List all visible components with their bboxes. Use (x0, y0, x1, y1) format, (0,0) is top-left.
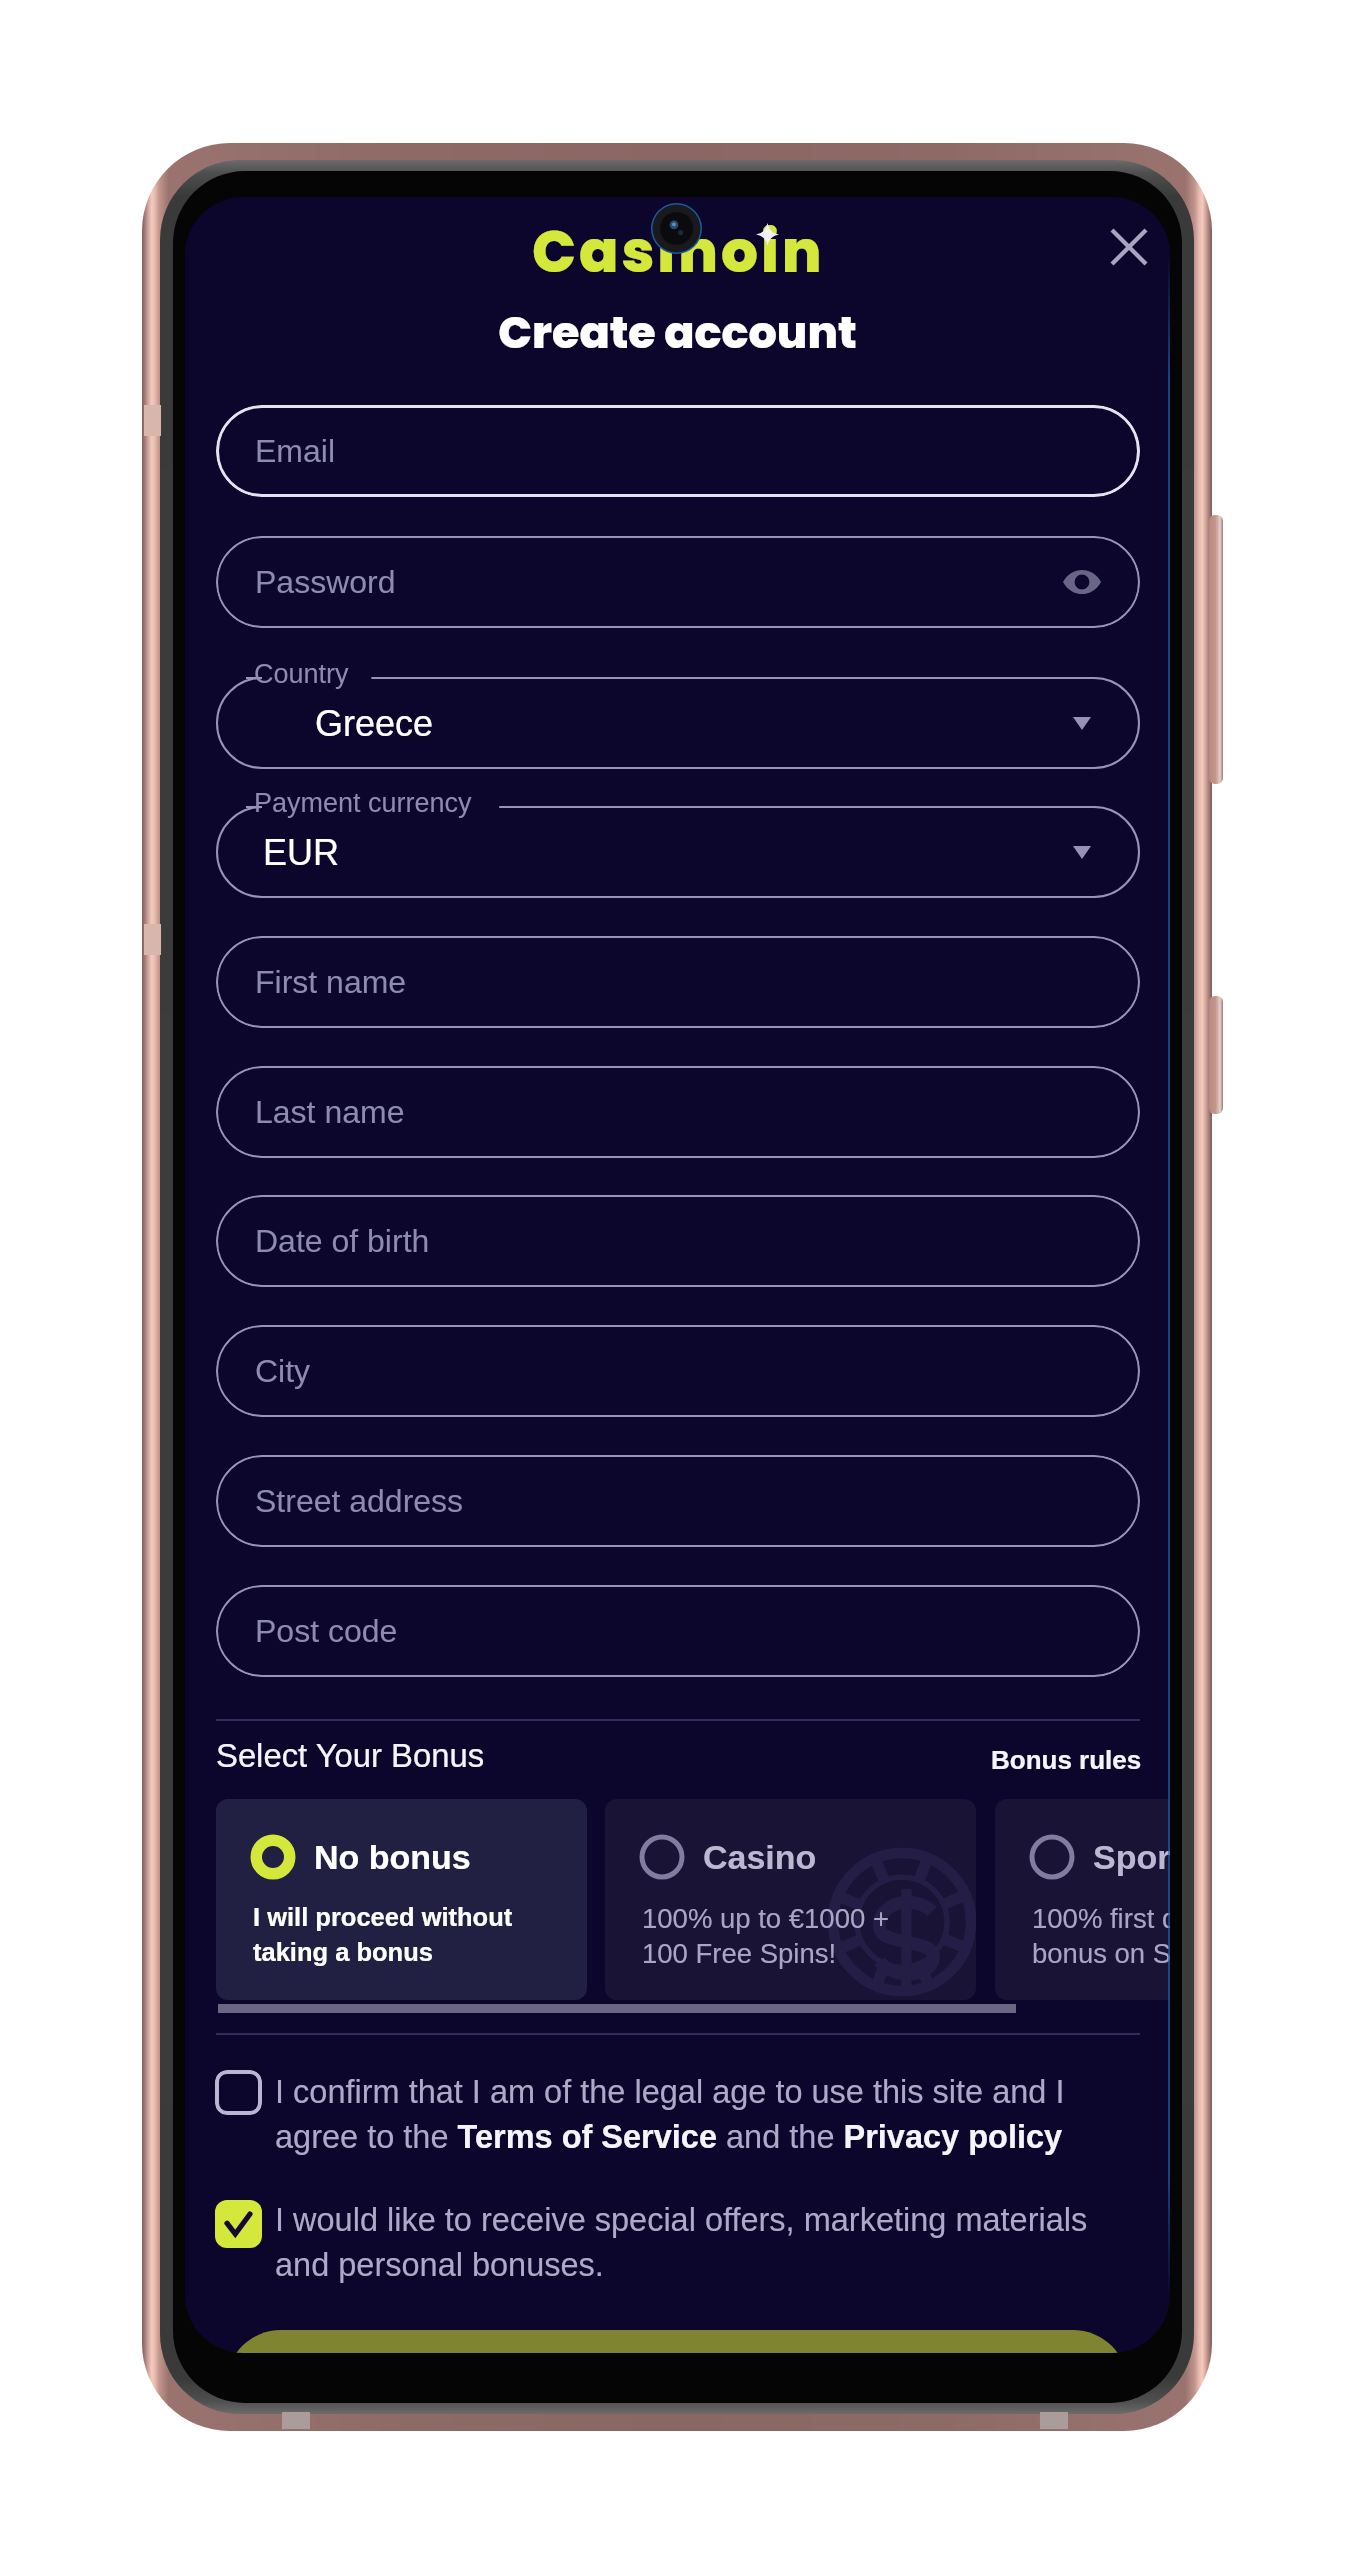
button[interactable]: Post code (216, 1585, 1140, 1677)
staticText: Post code (255, 1613, 398, 1649)
button[interactable]: First name (216, 936, 1140, 1028)
staticText: I will proceed without taking a bonus (253, 1903, 513, 1967)
button[interactable]: I confirm legal age (215, 2070, 262, 2115)
button[interactable]: Password (216, 536, 1140, 628)
staticText: Street address (255, 1483, 464, 1519)
staticText: I confirm that I am of the legal age to … (275, 2074, 1075, 2155)
staticText: Date of birth (255, 1223, 430, 1259)
button[interactable]: Street address (216, 1455, 1140, 1547)
button[interactable]: Receive special offers (215, 2200, 262, 2248)
staticText: Country (254, 659, 349, 689)
staticText: Payment currency (254, 788, 472, 818)
staticText: Create account (185, 301, 1170, 363)
button[interactable]: Date of birth (216, 1195, 1140, 1287)
staticText: Greece (315, 703, 434, 743)
staticText: First name (255, 964, 407, 1000)
staticText: Casinoin (532, 211, 825, 292)
staticText: Sports (1093, 1838, 1170, 1876)
button[interactable]: City (216, 1325, 1140, 1417)
button[interactable]: Casino (605, 1799, 976, 2000)
staticText: Password (255, 564, 396, 600)
button[interactable]: Close (1079, 197, 1170, 297)
staticText: Casino (703, 1838, 817, 1876)
button[interactable] (226, 2330, 1128, 2353)
button[interactable]: Greece (216, 677, 1140, 769)
staticText: City (255, 1353, 311, 1389)
staticText: EUR (263, 832, 340, 872)
staticText: No bonus (314, 1838, 471, 1876)
button[interactable]: Bonus rules (991, 1745, 1142, 1774)
staticText: 100% first deposit bonus on Sports (1032, 1903, 1170, 1969)
staticText: I would like to receive special offers, … (275, 2202, 1135, 2283)
staticText: Bonus rules (991, 1745, 1142, 1774)
staticText: Email (255, 433, 336, 469)
staticText: Select Your Bonus (216, 1737, 485, 1774)
staticText: 100% up to €1000 + 100 Free Spins! (642, 1903, 889, 1969)
button[interactable]: Sports (995, 1799, 1170, 2000)
button[interactable]: No bonus (216, 1799, 587, 2000)
button[interactable]: Email (216, 405, 1140, 497)
button[interactable]: Last name (216, 1066, 1140, 1158)
staticText: Last name (255, 1094, 405, 1130)
button[interactable]: EUR (216, 806, 1140, 898)
